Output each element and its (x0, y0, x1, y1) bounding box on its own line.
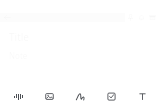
button[interactable]: Add text (136, 90, 148, 102)
button[interactable]: Add audio recording (12, 90, 24, 102)
button[interactable]: Add checkboxes (105, 90, 117, 102)
button[interactable]: Add drawing (74, 90, 86, 102)
button[interactable]: Add image (43, 90, 55, 102)
